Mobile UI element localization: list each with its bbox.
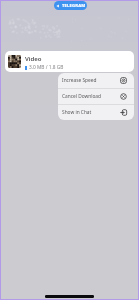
staticText: Increase Speed xyxy=(62,77,97,84)
staticText: TELEGRAM xyxy=(62,3,86,9)
button[interactable]: Increase Speed xyxy=(58,73,134,88)
staticText: Show in Chat xyxy=(62,109,92,116)
button[interactable]: Show in Chat xyxy=(58,105,134,120)
staticText: Cancel Download xyxy=(62,93,102,100)
button[interactable]: Video xyxy=(5,51,134,72)
staticText: Video xyxy=(25,55,42,63)
staticText: 3.0 MB / 1.8 GB xyxy=(29,64,64,71)
button[interactable]: Back to Telegram xyxy=(54,1,87,10)
button[interactable]: Cancel Download xyxy=(58,89,134,104)
